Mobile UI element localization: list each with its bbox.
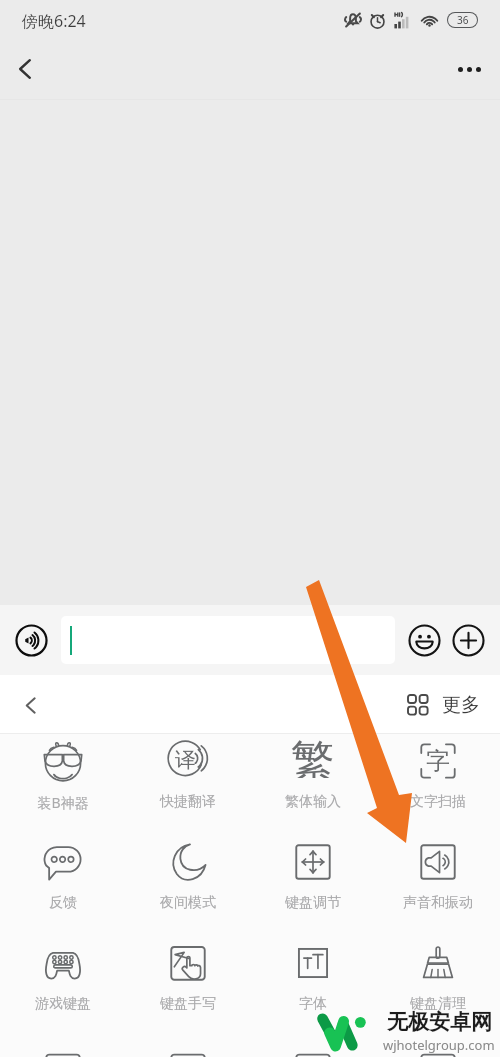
staticText: 反馈 (49, 894, 77, 912)
staticText: 文字扫描 (410, 793, 466, 811)
button[interactable]: 夜间模式 (125, 835, 250, 936)
staticText: 键盘调节 (285, 894, 341, 912)
staticText: 傍晚6:24 (22, 10, 86, 32)
button[interactable]: 键盘手写 (125, 936, 250, 1037)
staticText: 游戏键盘 (35, 995, 91, 1013)
staticText: wjhotelgroup.com (383, 1036, 495, 1054)
staticText: 快捷翻译 (160, 793, 216, 811)
staticText: 声音和振动 (403, 894, 473, 912)
staticText: 键盘手写 (160, 995, 216, 1013)
staticText: 无极安卓网 (387, 1009, 492, 1035)
staticText: 装B神器 (37, 793, 89, 812)
button[interactable]: More options (446, 46, 492, 92)
staticText: 36 (457, 13, 469, 27)
button[interactable]: 字体 (250, 936, 375, 1037)
button[interactable]: 键盘调节 (250, 835, 375, 936)
button[interactable]: Back (8, 683, 52, 727)
button[interactable]: 反馈 (0, 835, 125, 936)
staticText: 字 (426, 746, 450, 776)
button[interactable]: 键盘清理 (375, 936, 500, 1037)
button[interactable]: 繁 (250, 734, 375, 835)
staticText: 更多 (442, 693, 480, 717)
button[interactable]: More option (0, 1037, 125, 1057)
staticText: 夜间模式 (160, 894, 216, 912)
button[interactable] (61, 616, 395, 664)
button[interactable]: Voice input (10, 619, 52, 661)
staticText: 键盘清理 (410, 995, 466, 1013)
staticText: 繁 (291, 734, 335, 778)
button[interactable]: Back (2, 46, 48, 92)
button[interactable]: More option (375, 1037, 500, 1057)
button[interactable]: More option (250, 1037, 375, 1057)
button[interactable]: Add (448, 620, 488, 660)
button[interactable]: 字 (375, 734, 500, 835)
staticText: 繁体输入 (285, 793, 341, 811)
button[interactable]: 游戏键盘 (0, 936, 125, 1037)
staticText: 字体 (299, 995, 327, 1013)
button[interactable]: 装B神器 (0, 734, 125, 835)
button[interactable]: Emoji (404, 620, 444, 660)
button[interactable]: 声音和振动 (375, 835, 500, 936)
button[interactable]: 更多 (408, 693, 480, 717)
staticText: 译 (175, 747, 196, 773)
button[interactable]: 译 (125, 734, 250, 835)
button[interactable]: More option (125, 1037, 250, 1057)
